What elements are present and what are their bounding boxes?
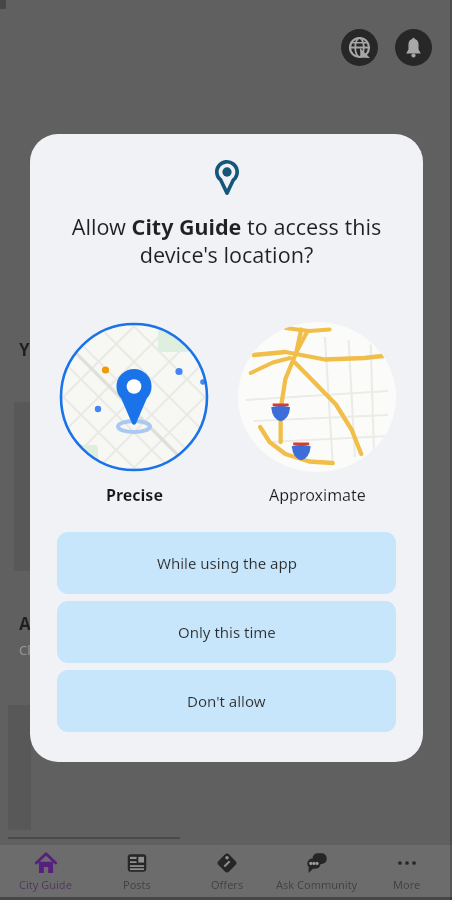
staticText: Precise xyxy=(106,484,163,504)
button[interactable] xyxy=(341,29,378,66)
staticText: More xyxy=(393,877,421,892)
staticText: Cl xyxy=(19,641,31,659)
button[interactable]: Ask Community xyxy=(272,845,362,900)
button[interactable] xyxy=(59,322,209,472)
staticText: Approximate xyxy=(269,484,366,504)
button[interactable]: Offers xyxy=(182,845,272,900)
staticText: Ask Community xyxy=(276,877,358,892)
button[interactable] xyxy=(238,322,396,472)
staticText: Posts xyxy=(123,877,151,892)
button[interactable] xyxy=(395,29,432,66)
staticText: A xyxy=(19,612,31,635)
staticText: Only this time xyxy=(178,622,276,642)
button[interactable]: While using the app xyxy=(57,532,396,594)
staticText: City Guide xyxy=(19,877,72,892)
button[interactable]: Only this time xyxy=(57,601,396,663)
button[interactable]: Don't allow xyxy=(57,670,396,732)
staticText: Y xyxy=(19,338,30,361)
button[interactable]: More xyxy=(362,845,452,900)
button[interactable]: Posts xyxy=(91,845,182,900)
staticText: Allow City Guide to access this device's… xyxy=(57,212,396,268)
button[interactable]: City Guide xyxy=(0,845,91,900)
staticText: Don't allow xyxy=(187,691,266,711)
staticText: While using the app xyxy=(157,553,297,573)
staticText: Offers xyxy=(211,877,244,892)
